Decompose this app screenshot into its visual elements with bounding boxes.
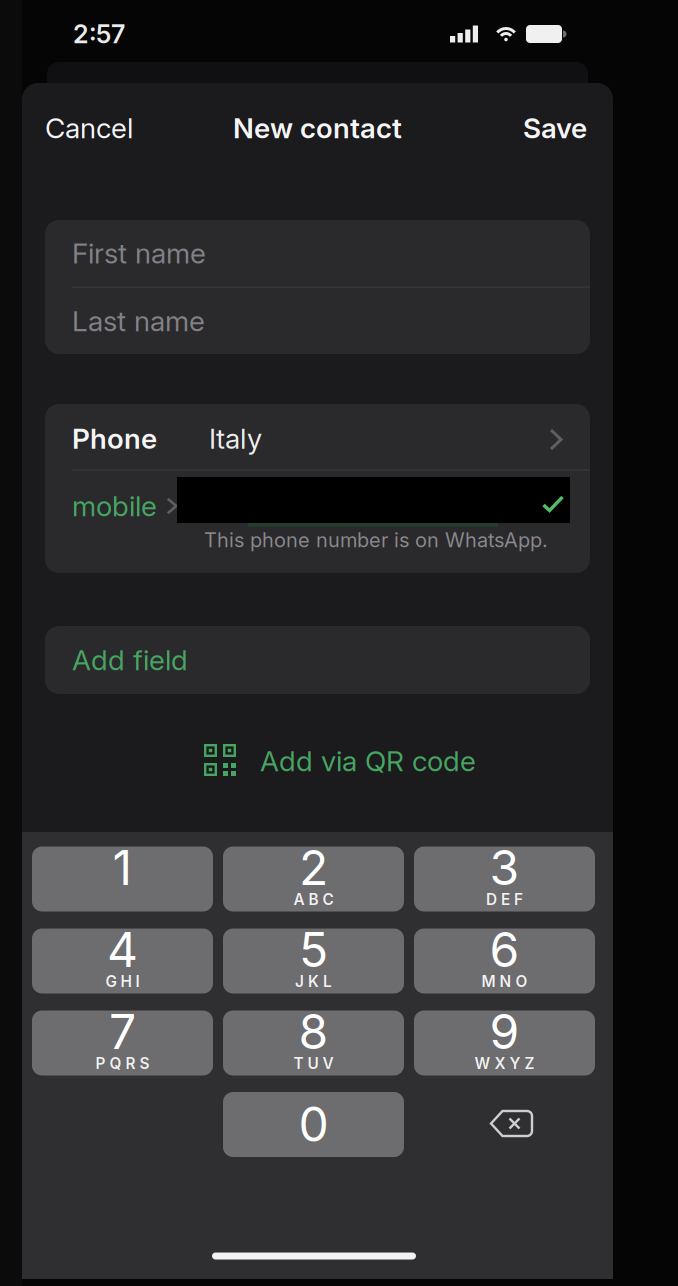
button[interactable]: 2 xyxy=(223,846,404,911)
staticText: 4 xyxy=(107,920,138,979)
staticText: 2 xyxy=(299,838,328,897)
button[interactable]: Save xyxy=(427,105,587,151)
staticText: W X Y Z xyxy=(474,1054,534,1073)
staticText: J K L xyxy=(295,972,332,991)
button[interactable]: Delete xyxy=(489,1107,533,1139)
staticText: P Q R S xyxy=(95,1054,149,1073)
staticText: Add via QR code xyxy=(260,744,476,778)
staticText: G H I xyxy=(105,972,139,991)
staticText: 5 xyxy=(299,920,328,979)
button[interactable]: Phone xyxy=(45,405,590,471)
staticText: D E F xyxy=(486,890,523,909)
button[interactable]: mobile xyxy=(45,470,590,573)
button[interactable]: Cancel xyxy=(45,105,205,151)
button[interactable]: 8 xyxy=(223,1010,404,1075)
button[interactable]: 1 xyxy=(32,846,213,911)
staticText: 6 xyxy=(489,920,519,979)
staticText: 9 xyxy=(489,1002,519,1061)
staticText: Last name xyxy=(72,304,205,338)
staticText: A B C xyxy=(293,890,333,909)
staticText: Phone xyxy=(72,422,157,455)
button[interactable]: 7 xyxy=(32,1010,213,1075)
button[interactable]: Last name xyxy=(45,288,590,354)
button[interactable]: Add field xyxy=(45,626,590,694)
staticText: Italy xyxy=(209,422,262,455)
button[interactable]: 9 xyxy=(414,1010,595,1075)
staticText: First name xyxy=(72,236,206,270)
button[interactable]: 6 xyxy=(414,928,595,993)
staticText: 3 xyxy=(489,838,519,897)
staticText: 8 xyxy=(298,1002,328,1061)
staticText: New contact xyxy=(233,111,402,145)
button[interactable]: 5 xyxy=(223,928,404,993)
staticText: Save xyxy=(523,111,587,145)
staticText: Cancel xyxy=(45,111,133,145)
staticText: M N O xyxy=(481,972,527,991)
staticText: 7 xyxy=(109,1002,136,1061)
button[interactable]: Add via QR code xyxy=(194,729,484,791)
button[interactable]: 0 xyxy=(223,1092,404,1157)
staticText: mobile xyxy=(72,489,157,523)
staticText: 0 xyxy=(298,1095,328,1153)
button[interactable]: 4 xyxy=(32,928,213,993)
button[interactable]: First name xyxy=(45,220,590,286)
staticText: This phone number is on WhatsApp. xyxy=(204,528,548,552)
staticText: 1 xyxy=(112,838,132,897)
button[interactable]: 3 xyxy=(414,846,595,911)
staticText: 2:57 xyxy=(73,19,125,49)
staticText: Add field xyxy=(72,643,188,677)
staticText: T U V xyxy=(293,1054,333,1073)
